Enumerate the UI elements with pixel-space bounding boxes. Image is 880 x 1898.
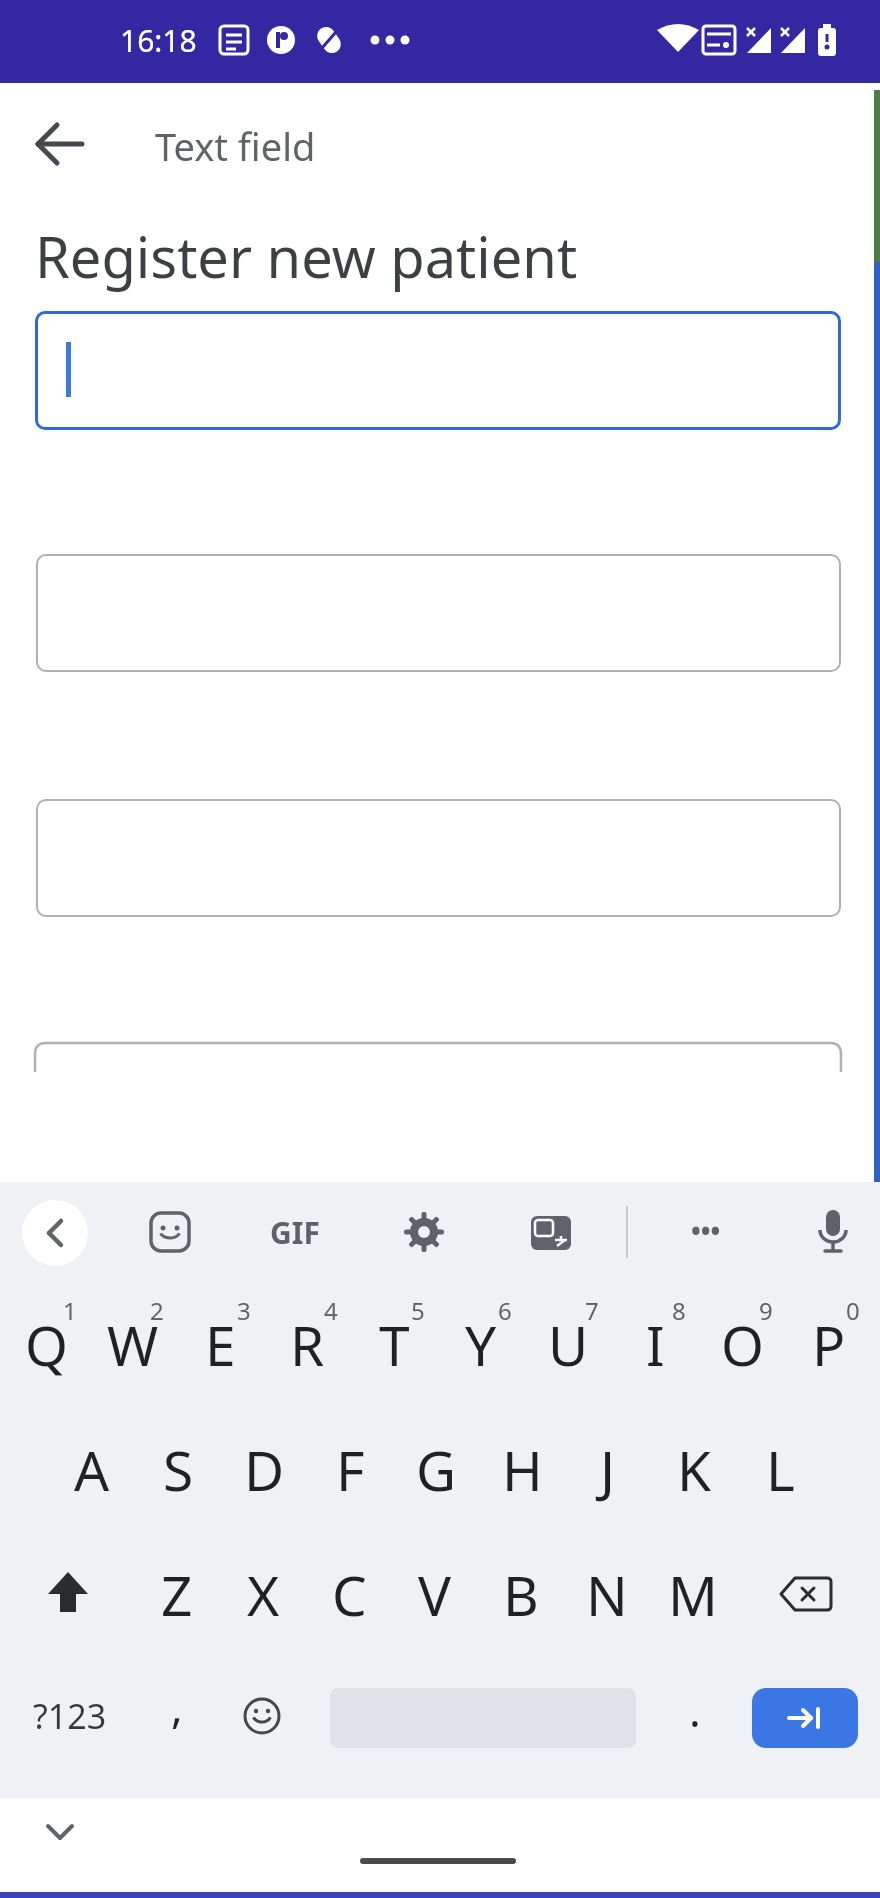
button[interactable]: [38, 1564, 98, 1624]
staticText: X: [247, 1557, 280, 1632]
staticText: 5: [411, 1294, 425, 1327]
staticText: D: [244, 1432, 285, 1507]
button[interactable]: [775, 1564, 835, 1624]
button[interactable]: F: [306, 1414, 394, 1524]
button[interactable]: D: [220, 1414, 308, 1524]
staticText: •••: [691, 1213, 721, 1248]
staticText: M: [668, 1557, 718, 1632]
button[interactable]: G: [392, 1414, 480, 1524]
button[interactable]: K: [650, 1414, 738, 1524]
button[interactable]: H: [478, 1414, 566, 1524]
staticText: E: [205, 1307, 236, 1382]
staticText: A: [74, 1432, 110, 1507]
staticText: V: [418, 1557, 452, 1632]
staticText: U: [548, 1307, 589, 1382]
staticText: L: [766, 1432, 795, 1507]
button[interactable]: [10, 116, 108, 172]
button[interactable]: ?123: [10, 1681, 130, 1751]
staticText: 1: [63, 1294, 77, 1327]
staticText: 4: [324, 1294, 338, 1327]
staticText: ,: [171, 1676, 183, 1736]
staticText: O: [721, 1307, 764, 1382]
button[interactable]: I: [611, 1289, 699, 1399]
staticText: 8: [672, 1294, 686, 1327]
button[interactable]: [752, 1688, 858, 1748]
button[interactable]: T: [350, 1289, 438, 1399]
staticText: 6: [498, 1294, 512, 1327]
staticText: C: [332, 1557, 367, 1632]
staticText: .: [689, 1680, 701, 1740]
staticText: T: [379, 1307, 410, 1382]
button[interactable]: .: [665, 1670, 725, 1750]
button[interactable]: X: [219, 1539, 307, 1649]
staticText: G: [416, 1432, 457, 1507]
button[interactable]: •••: [606, 1180, 806, 1280]
button[interactable]: O: [698, 1289, 786, 1399]
staticText: S: [163, 1432, 194, 1507]
button[interactable]: [529, 1212, 573, 1254]
staticText: 9: [759, 1294, 773, 1327]
button[interactable]: S: [134, 1414, 222, 1524]
button[interactable]: N: [563, 1539, 651, 1649]
staticText: J: [600, 1432, 616, 1507]
button[interactable]: [36, 799, 841, 917]
staticText: Q: [25, 1307, 68, 1382]
button[interactable]: [148, 1210, 192, 1254]
button[interactable]: M: [649, 1539, 737, 1649]
button[interactable]: Q: [2, 1289, 90, 1399]
button[interactable]: J: [564, 1414, 652, 1524]
button[interactable]: L: [736, 1414, 824, 1524]
staticText: GIF: [270, 1212, 320, 1253]
staticText: H: [502, 1432, 543, 1507]
button[interactable]: Z: [133, 1539, 221, 1649]
staticText: 2: [150, 1294, 164, 1327]
button[interactable]: R: [263, 1289, 351, 1399]
button[interactable]: B: [477, 1539, 565, 1649]
button[interactable]: [35, 311, 841, 430]
button[interactable]: [36, 1812, 84, 1852]
button[interactable]: P: [785, 1289, 873, 1399]
button[interactable]: W: [89, 1289, 177, 1399]
staticText: 7: [585, 1294, 599, 1327]
staticText: Z: [161, 1557, 193, 1632]
button[interactable]: ,: [147, 1666, 207, 1746]
staticText: Register new patient: [35, 218, 578, 294]
button[interactable]: [402, 1210, 446, 1254]
staticText: 0: [846, 1294, 860, 1327]
staticText: Y: [465, 1307, 497, 1382]
staticText: ?123: [33, 1693, 107, 1739]
button[interactable]: [22, 1200, 88, 1266]
button[interactable]: E: [176, 1289, 264, 1399]
staticText: K: [677, 1432, 712, 1507]
button[interactable]: [36, 554, 841, 672]
button[interactable]: GIF: [195, 1182, 395, 1282]
button[interactable]: C: [305, 1539, 393, 1649]
staticText: F: [336, 1432, 365, 1507]
staticText: P: [812, 1307, 846, 1382]
staticText: B: [503, 1557, 539, 1632]
staticText: I: [646, 1307, 665, 1382]
staticText: N: [586, 1557, 628, 1632]
staticText: R: [290, 1307, 325, 1382]
button[interactable]: V: [391, 1539, 479, 1649]
button[interactable]: [240, 1694, 284, 1738]
button[interactable]: [811, 1206, 855, 1258]
staticText: W: [107, 1307, 159, 1382]
staticText: Text field: [155, 120, 316, 172]
staticText: 16:18: [120, 20, 197, 61]
button[interactable]: Y: [437, 1289, 525, 1399]
staticText: 3: [237, 1294, 251, 1327]
button[interactable]: U: [524, 1289, 612, 1399]
button[interactable]: A: [48, 1414, 136, 1524]
